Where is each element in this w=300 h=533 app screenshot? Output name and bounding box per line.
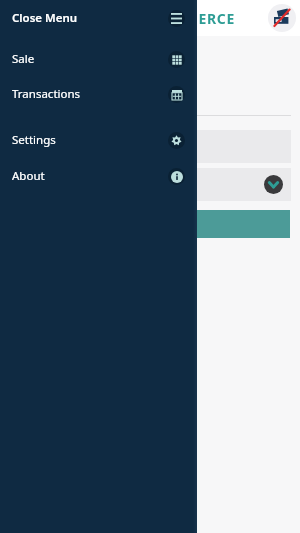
button[interactable]: Close Menu (0, 6, 197, 30)
staticText: Close Menu (12, 10, 168, 26)
staticText: COMMERCE (150, 9, 235, 28)
staticText: Settings (12, 132, 168, 148)
button[interactable]: Expand dropdown (264, 175, 283, 194)
button[interactable]: About (0, 164, 197, 188)
button[interactable]: Expand dropdown (8, 168, 291, 201)
staticText: Sale (12, 51, 168, 67)
staticText: About (12, 168, 168, 184)
button[interactable] (8, 130, 291, 163)
staticText: Transactions (12, 86, 168, 102)
button[interactable]: Printer disabled (268, 4, 296, 32)
button[interactable]: Sale (0, 47, 197, 71)
button[interactable] (7, 210, 290, 238)
button[interactable]: Transactions (0, 82, 197, 106)
button[interactable]: Settings (0, 128, 197, 152)
